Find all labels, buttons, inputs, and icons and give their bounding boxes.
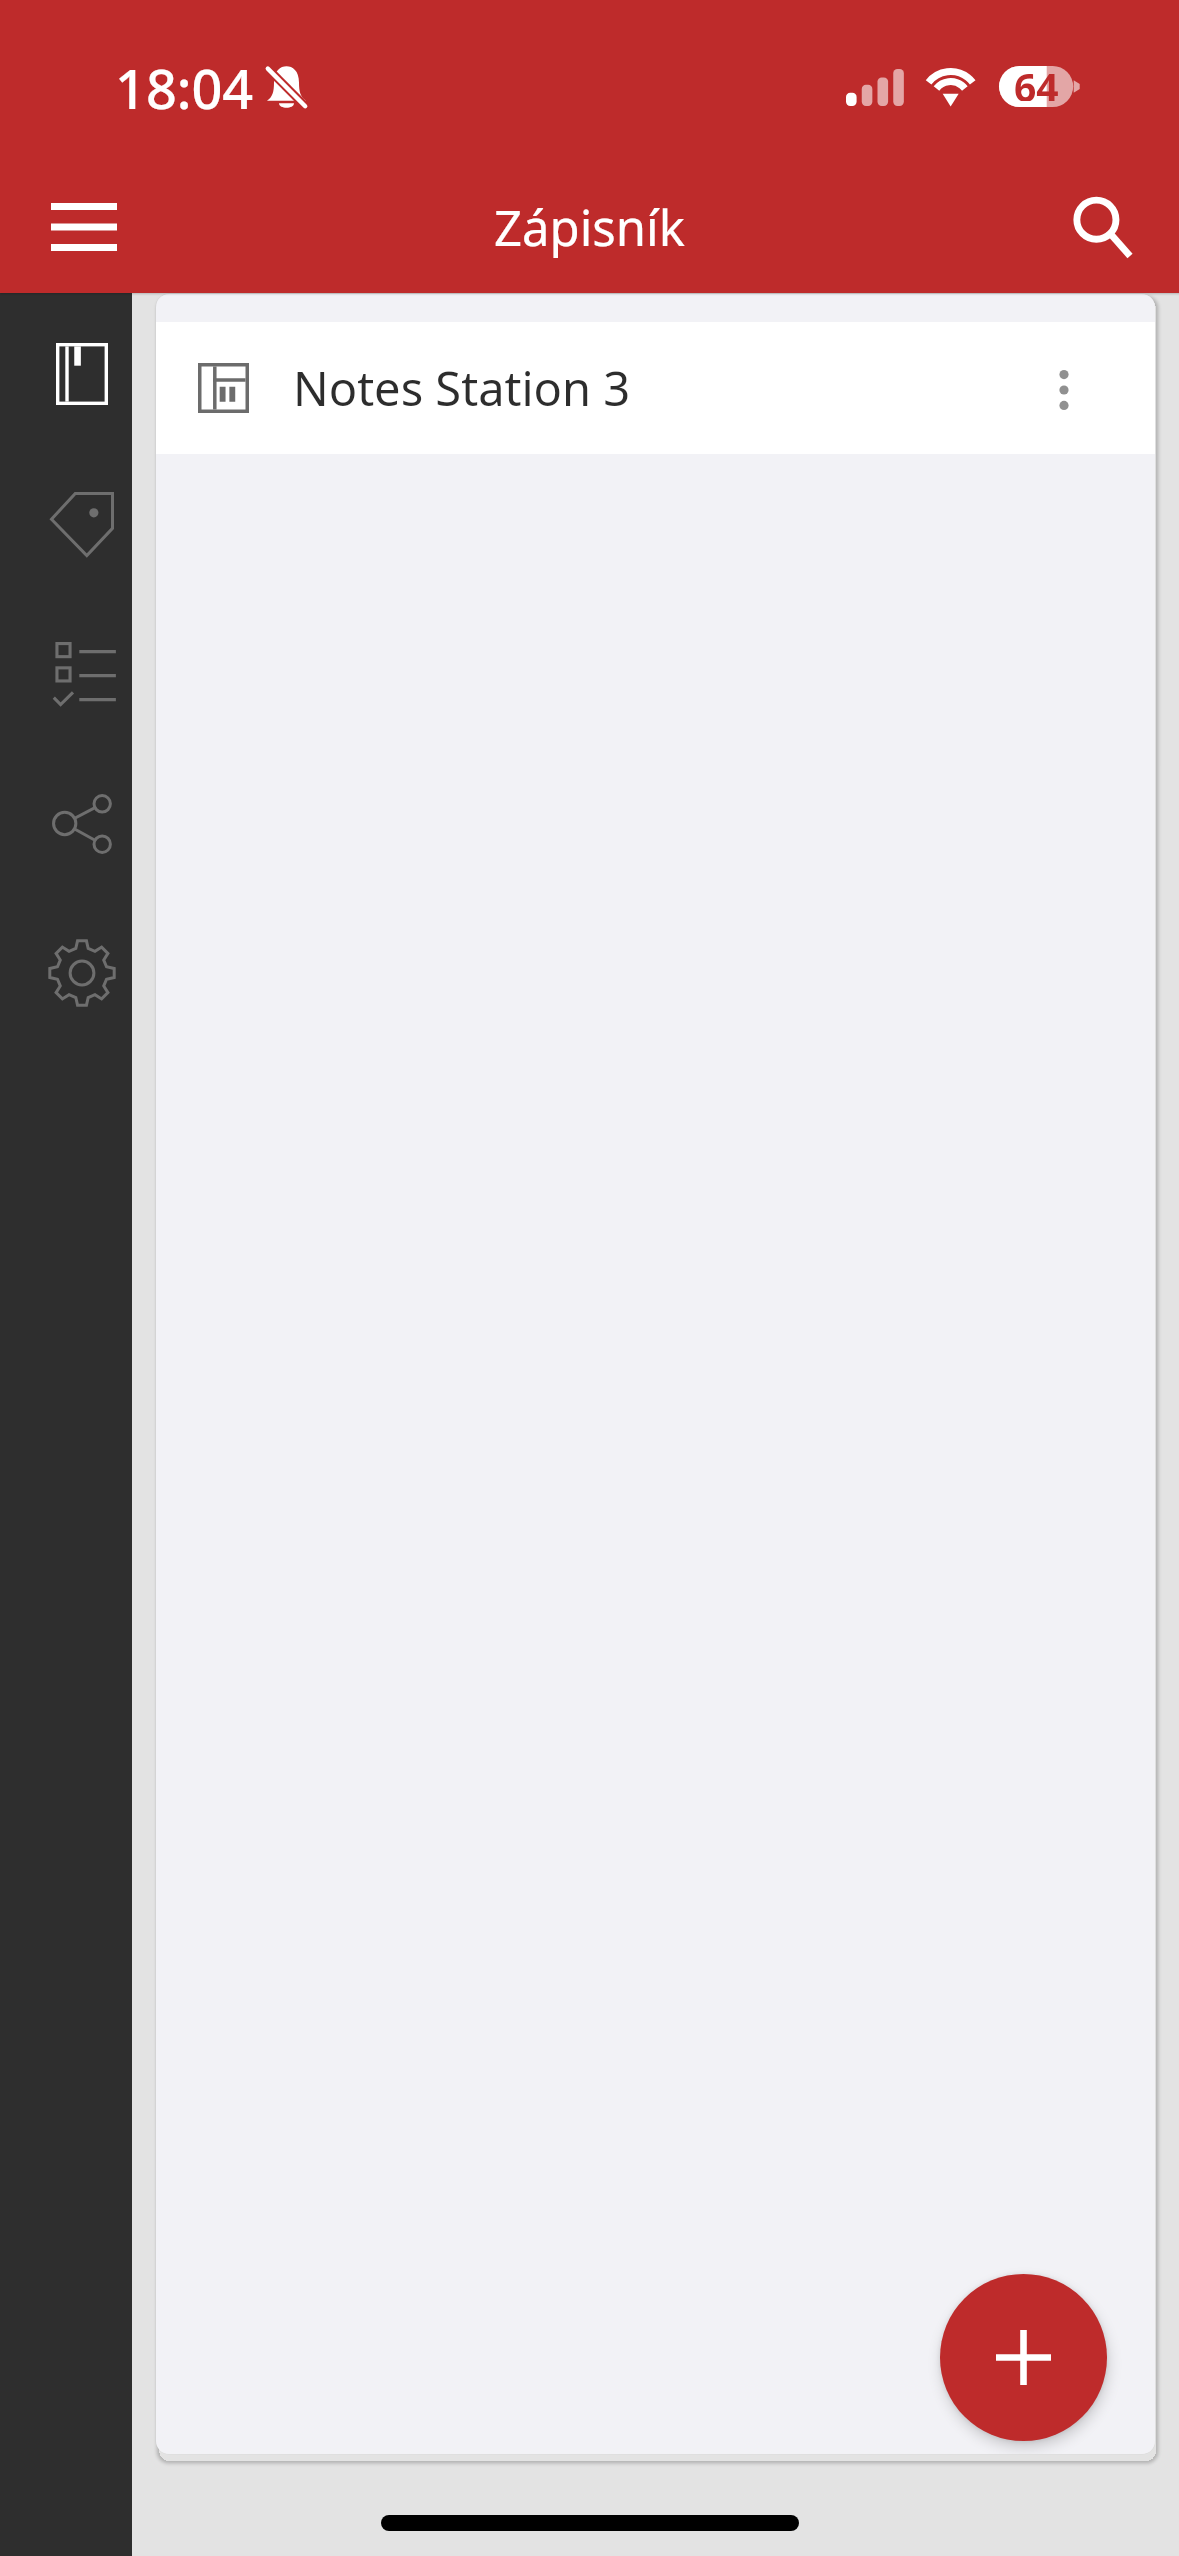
staticText: Notes Station 3 (293, 356, 631, 420)
button[interactable]: Checklists (16, 608, 148, 740)
button[interactable]: Shared (16, 758, 148, 890)
button[interactable]: Search (1036, 160, 1156, 294)
button[interactable]: Notebooks (16, 308, 148, 440)
button[interactable]: Notes Station 3 (156, 322, 1155, 454)
button[interactable]: More options (1009, 322, 1119, 454)
button[interactable]: Create note (940, 2274, 1107, 2441)
button[interactable]: Tags (16, 458, 148, 590)
button[interactable]: Menu (24, 167, 144, 287)
staticText: 18:04 (115, 51, 254, 125)
button[interactable]: Settings (16, 907, 148, 1039)
staticText: 64 (1014, 60, 1059, 101)
staticText: Zápisník (494, 194, 685, 261)
